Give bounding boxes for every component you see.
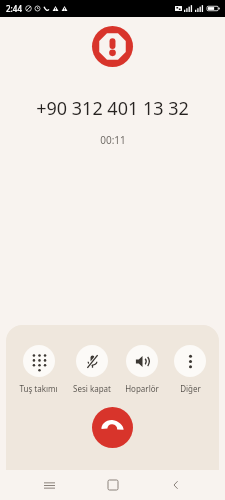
staticText: 00:11 — [100, 133, 126, 147]
button[interactable]: Recents — [34, 470, 64, 500]
button[interactable]: Diğer — [172, 345, 208, 394]
staticText: Diğer — [180, 383, 201, 394]
button[interactable]: End call — [92, 407, 133, 448]
button[interactable]: Sesi kapat — [71, 345, 113, 394]
button[interactable]: Home — [98, 470, 128, 500]
staticText: Sesi kapat — [73, 383, 111, 394]
button[interactable]: Hoparlör — [123, 345, 161, 394]
button[interactable]: Tuş takımı — [17, 345, 60, 394]
staticText: Hoparlör — [125, 383, 159, 394]
staticText: +90 312 401 13 32 — [36, 96, 189, 121]
staticText: 2:44 — [6, 3, 22, 14]
staticText: Tuş takımı — [19, 383, 58, 394]
button[interactable]: Back — [161, 470, 191, 500]
